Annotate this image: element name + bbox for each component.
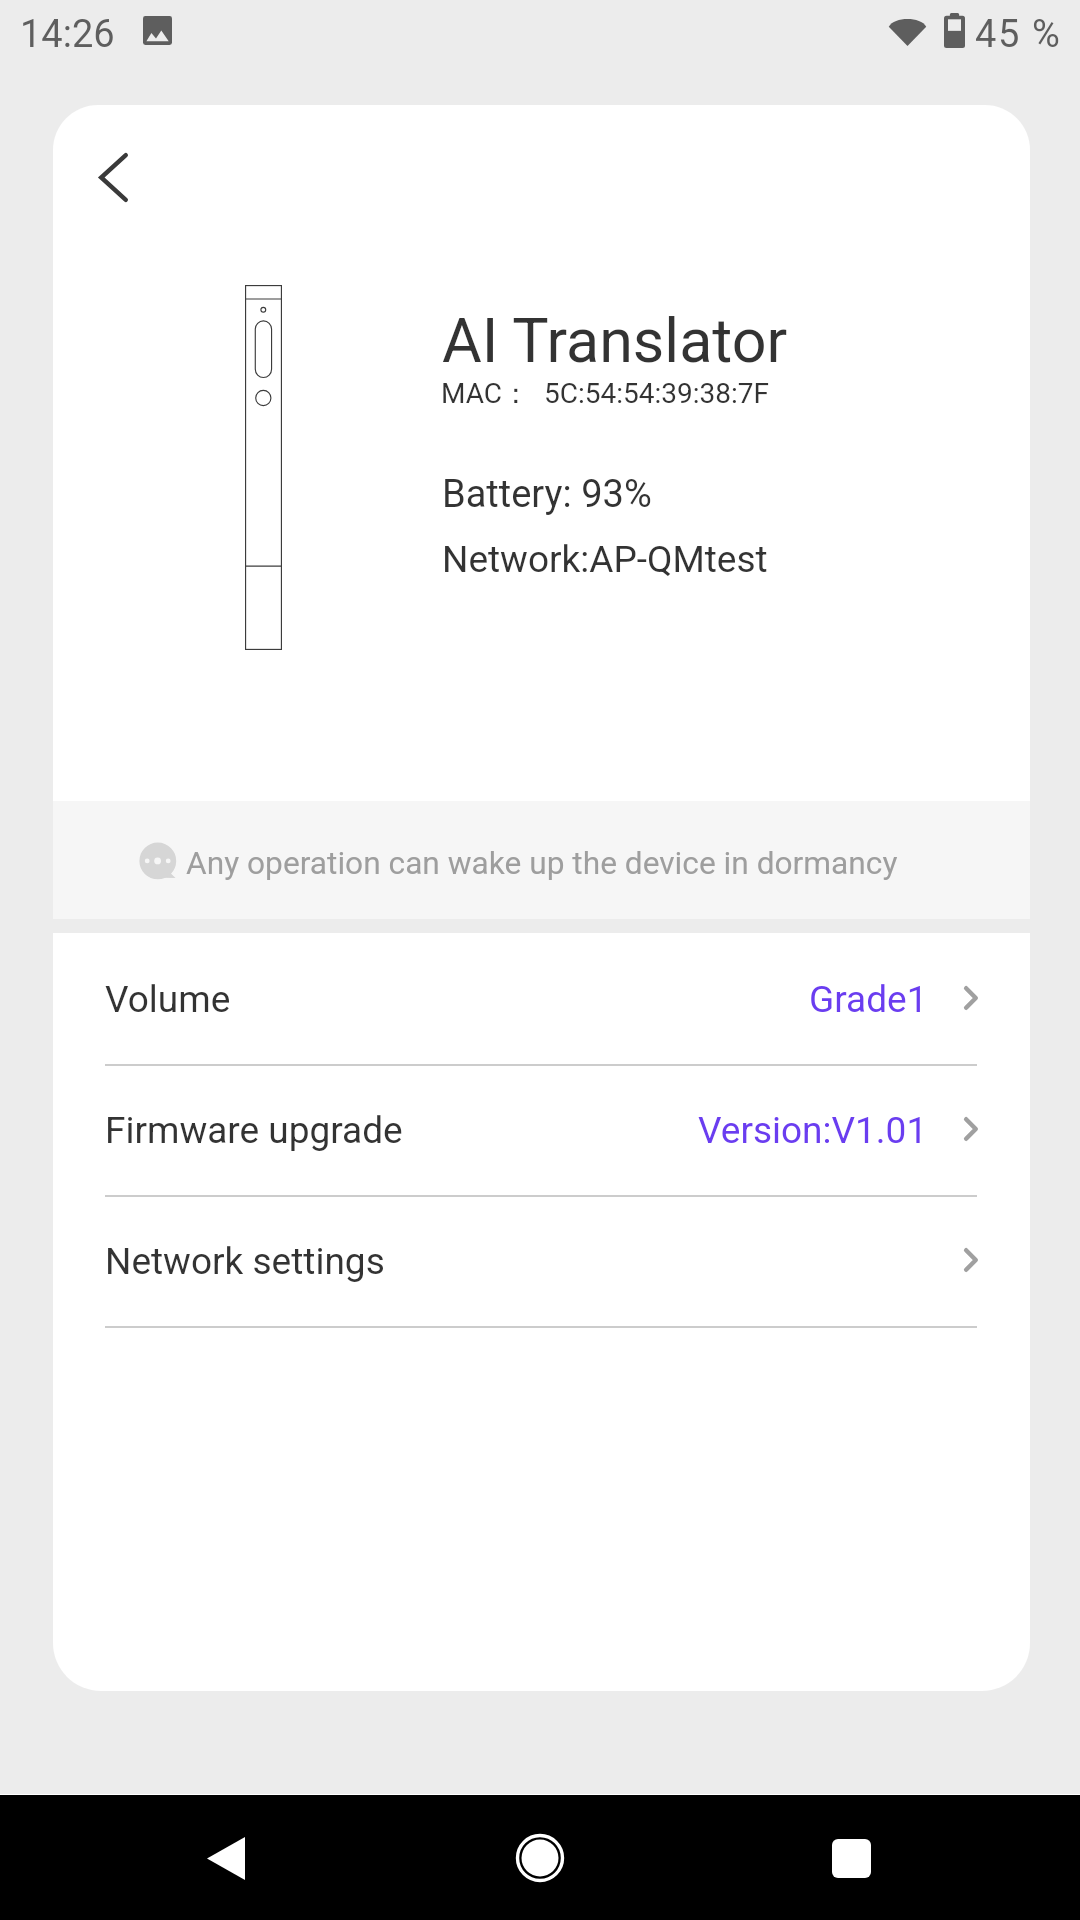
staticText: Volume bbox=[105, 978, 231, 1021]
button[interactable]: Home bbox=[480, 1816, 600, 1900]
button[interactable]: Back bbox=[166, 1816, 286, 1900]
button[interactable]: Recents bbox=[791, 1816, 911, 1900]
staticText: Version:V1.01 bbox=[698, 1109, 928, 1152]
button[interactable]: Firmware upgrade bbox=[53, 1066, 1030, 1197]
staticText: Firmware upgrade bbox=[105, 1109, 403, 1152]
button[interactable]: Network settings bbox=[53, 1197, 1030, 1328]
staticText: AI Translator bbox=[442, 305, 788, 376]
button[interactable]: Volume bbox=[53, 935, 1030, 1066]
button[interactable]: Back bbox=[70, 134, 156, 220]
staticText: Grade1 bbox=[809, 978, 928, 1021]
staticText: Network:AP-QMtest bbox=[442, 538, 768, 581]
staticText: Network settings bbox=[105, 1240, 385, 1283]
staticText: Any operation can wake up the device in … bbox=[186, 845, 898, 882]
staticText: Battery: 93% bbox=[442, 472, 652, 517]
staticText: 45 % bbox=[975, 12, 1062, 57]
staticText: 14:26 bbox=[20, 12, 115, 57]
staticText: MAC： 5C:54:54:39:38:7F bbox=[441, 376, 769, 411]
